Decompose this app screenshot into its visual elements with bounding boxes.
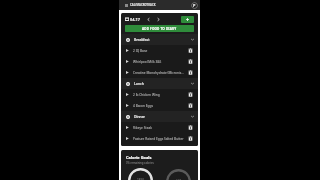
staticText: Ribeye Steak	[133, 126, 186, 130]
staticText: Pasture Raised Eggs Salted Butter	[133, 137, 186, 141]
button[interactable]: 2 IQ Base	[121, 45, 198, 56]
staticText: Creatine Monohydrate (Microniz…	[133, 71, 186, 75]
staticText: 2 lb Chicken Wing	[133, 93, 186, 97]
button[interactable]: Next day	[156, 17, 161, 22]
staticText: 640	[176, 179, 182, 180]
button[interactable]: Delete entry	[188, 48, 193, 53]
staticText: 2 IQ Base	[133, 49, 186, 53]
button[interactable]: Delete entry	[188, 70, 193, 75]
button[interactable]: Delete entry	[188, 92, 193, 97]
staticText: Lunch	[134, 81, 144, 86]
button[interactable]: Navigation menu	[123, 2, 129, 8]
button[interactable]: 4 Bacon Eggs	[121, 100, 198, 111]
staticText: Whirlpool Milk 3&5	[133, 60, 186, 64]
button[interactable]: Dinner	[121, 111, 198, 122]
button[interactable]: Profile	[191, 2, 198, 9]
button[interactable]: Delete entry	[188, 125, 193, 130]
staticText: P	[193, 3, 196, 8]
button[interactable]: Pasture Raised Eggs Salted Butter	[121, 133, 198, 144]
staticText: Calorie Goals	[126, 155, 152, 160]
staticText: 04-17	[130, 17, 140, 22]
button[interactable]: Lunch	[121, 78, 198, 89]
button[interactable]: Add entry	[181, 16, 194, 23]
button[interactable]: Previous day	[146, 17, 151, 22]
staticText: 0% remaining calories	[126, 161, 154, 165]
button[interactable]: Delete entry	[188, 59, 193, 64]
staticText: 4 Bacon Eggs	[133, 104, 186, 108]
button[interactable]: Whirlpool Milk 3&5	[121, 56, 198, 67]
staticText: CAL/MACROTRACK	[130, 3, 156, 7]
staticText: Breakfast	[134, 37, 150, 42]
button[interactable]: Delete entry	[188, 103, 193, 108]
button[interactable]: 2 lb Chicken Wing	[121, 89, 198, 100]
button[interactable]: Breakfast	[121, 34, 198, 45]
staticText: ADD FOOD TO DIARY	[142, 27, 177, 31]
button[interactable]: Delete entry	[188, 136, 193, 141]
button[interactable]: Creatine Monohydrate (Microniz…	[121, 67, 198, 78]
staticText: 1850	[137, 178, 144, 180]
button[interactable]: Ribeye Steak	[121, 122, 198, 133]
staticText: Dinner	[134, 114, 146, 119]
button[interactable]: ADD FOOD TO DIARY	[125, 25, 194, 32]
